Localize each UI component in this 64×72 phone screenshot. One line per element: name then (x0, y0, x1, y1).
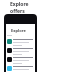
staticText: Explore (10, 1, 29, 8)
button[interactable]: Offer (7, 47, 34, 56)
other: Offer (7, 48, 12, 53)
button[interactable]: Offer (7, 38, 34, 47)
other: Offer (7, 66, 12, 71)
staticText: offers (10, 8, 25, 15)
other: Offer (7, 57, 12, 62)
other: Offer (7, 39, 12, 44)
button[interactable]: Offer (7, 56, 34, 65)
staticText: Explore (11, 28, 26, 33)
button[interactable]: Offer (7, 65, 34, 72)
